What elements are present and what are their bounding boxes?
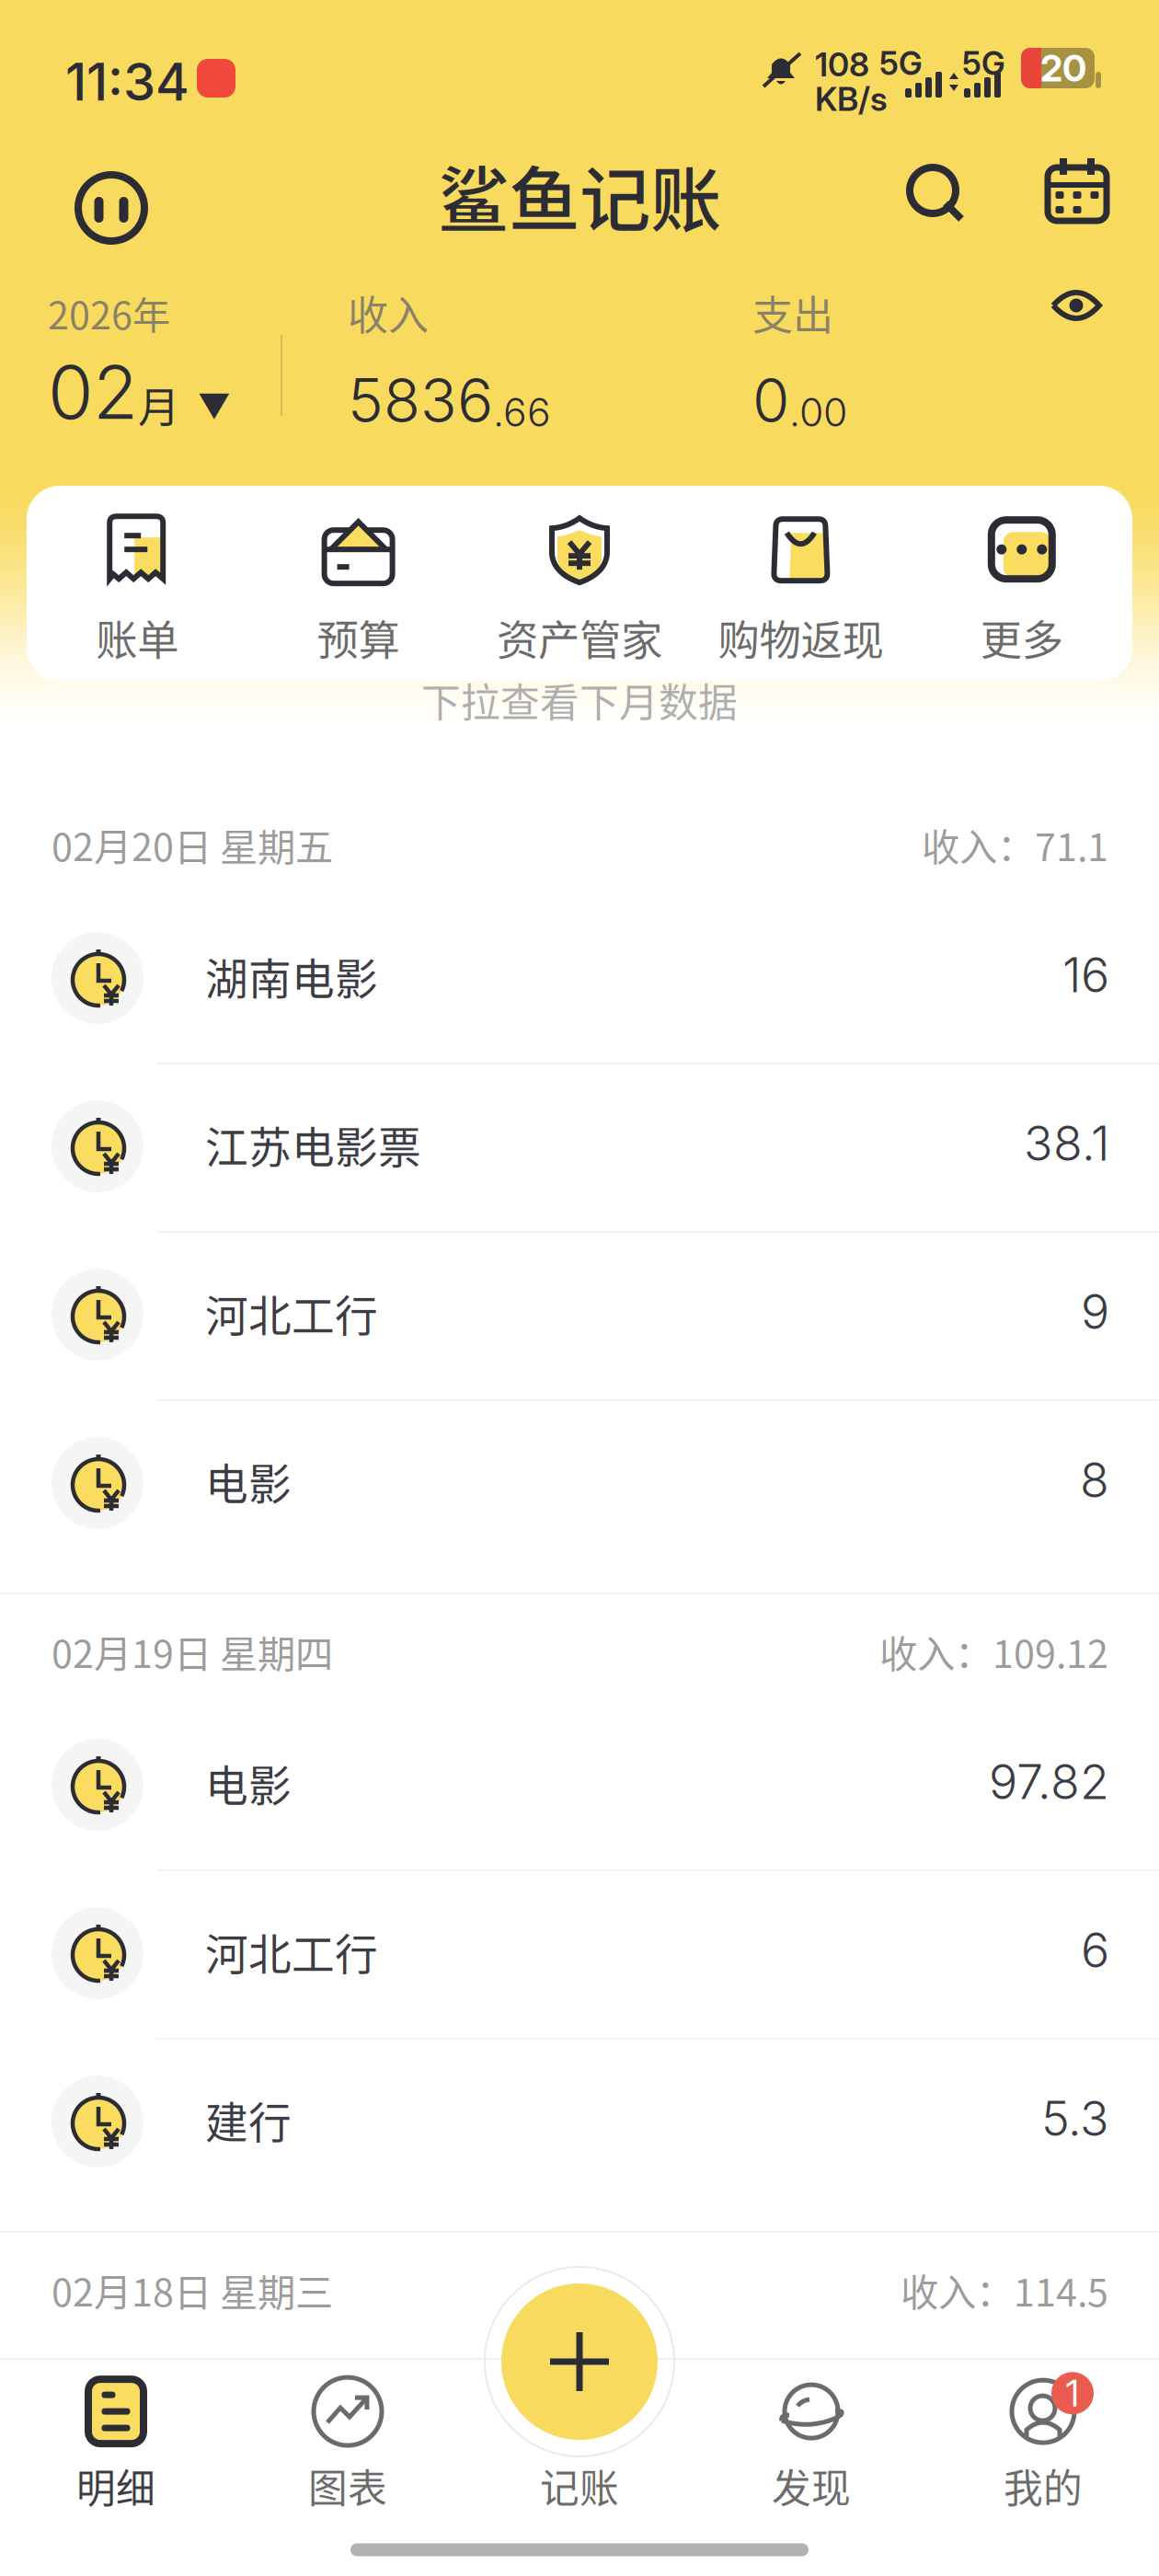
button[interactable]: 河北工行 bbox=[0, 1233, 1159, 1401]
button[interactable]: 河北工行 bbox=[0, 1871, 1159, 2040]
staticText: 108 bbox=[815, 44, 869, 84]
button[interactable]: 发现 bbox=[695, 2362, 927, 2522]
staticText: 收入：114.5 bbox=[901, 2262, 1108, 2317]
staticText: 16 bbox=[1062, 946, 1109, 1004]
button[interactable]: 湖南电影 bbox=[0, 896, 1159, 1064]
staticText: 明细 bbox=[76, 2457, 155, 2514]
staticText: 1 bbox=[1066, 2371, 1079, 2415]
staticText: 38.1 bbox=[1024, 1114, 1109, 1172]
button[interactable]: 购物返现 bbox=[690, 510, 911, 668]
staticText: 账单 bbox=[96, 607, 179, 668]
staticText: 电影 bbox=[205, 1450, 292, 1512]
staticText: 02月20日 星期五 bbox=[52, 817, 333, 872]
staticText: 收入：71.1 bbox=[922, 817, 1108, 872]
staticText: .66 bbox=[493, 388, 551, 436]
staticText: 收入 bbox=[348, 283, 429, 342]
button[interactable]: 预算 bbox=[248, 510, 469, 668]
staticText: 图表 bbox=[308, 2457, 387, 2514]
staticText: 建行 bbox=[205, 2088, 292, 2151]
button[interactable]: 江苏电影票 bbox=[0, 1064, 1159, 1233]
staticText: 02月19日 星期四 bbox=[52, 1624, 333, 1679]
staticText: 湖南电影 bbox=[205, 945, 378, 1007]
button[interactable]: 电影 bbox=[0, 1401, 1159, 1570]
staticText: 预算 bbox=[317, 607, 400, 668]
staticText: 02 bbox=[48, 348, 138, 437]
button[interactable]: Add transaction bbox=[483, 2265, 676, 2458]
staticText: 5836 bbox=[348, 364, 493, 437]
staticText: 5.3 bbox=[1041, 2089, 1109, 2147]
staticText: 鲨鱼记账 bbox=[438, 144, 721, 247]
staticText: 收入：109.12 bbox=[879, 1624, 1108, 1679]
button[interactable]: Profile bbox=[75, 171, 148, 245]
staticText: 河北工行 bbox=[205, 1920, 378, 1982]
staticText: .00 bbox=[789, 388, 847, 436]
staticText: 6 bbox=[1081, 1921, 1109, 1979]
button[interactable]: 记账 bbox=[464, 2362, 695, 2522]
staticText: 河北工行 bbox=[205, 1282, 378, 1344]
button[interactable]: Search bbox=[908, 166, 969, 226]
staticText: 江苏电影票 bbox=[205, 1113, 421, 1175]
staticText: 更多 bbox=[980, 607, 1063, 668]
staticText: 发现 bbox=[772, 2457, 851, 2514]
button[interactable]: 账单 bbox=[27, 510, 248, 668]
button[interactable]: 电影 bbox=[0, 1703, 1159, 1871]
staticText: 记账 bbox=[540, 2457, 619, 2514]
button[interactable]: 建行 bbox=[0, 2040, 1159, 2208]
button[interactable]: 更多 bbox=[911, 510, 1132, 668]
button[interactable]: Toggle amounts bbox=[1050, 287, 1102, 324]
staticText: 资产管家 bbox=[497, 607, 662, 668]
staticText: 下拉查看下月数据 bbox=[421, 672, 738, 728]
staticText: 11:34 bbox=[65, 51, 189, 113]
staticText: 购物返现 bbox=[718, 607, 883, 668]
staticText: KB/s bbox=[815, 79, 888, 119]
staticText: 月 bbox=[138, 374, 179, 435]
button[interactable]: 2026年 bbox=[48, 285, 287, 437]
staticText: 02月18日 星期三 bbox=[52, 2262, 333, 2317]
staticText: 支出 bbox=[752, 283, 833, 342]
staticText: 5G bbox=[879, 44, 923, 83]
button[interactable]: 明细 bbox=[0, 2362, 232, 2522]
staticText: 20 bbox=[1040, 46, 1086, 90]
staticText: 0 bbox=[752, 364, 789, 437]
button[interactable]: 1 bbox=[927, 2362, 1159, 2522]
staticText: 我的 bbox=[1004, 2457, 1083, 2514]
staticText: 9 bbox=[1081, 1282, 1109, 1340]
button[interactable]: Calendar bbox=[1048, 158, 1107, 221]
staticText: 8 bbox=[1080, 1451, 1109, 1509]
button[interactable]: 图表 bbox=[232, 2362, 464, 2522]
staticText: 97.82 bbox=[989, 1753, 1109, 1810]
staticText: 电影 bbox=[205, 1752, 292, 1814]
button[interactable]: 资产管家 bbox=[469, 510, 690, 668]
staticText: 5G bbox=[962, 44, 1005, 83]
staticText: ▼ bbox=[198, 386, 231, 426]
staticText: 2026年 bbox=[48, 285, 170, 340]
